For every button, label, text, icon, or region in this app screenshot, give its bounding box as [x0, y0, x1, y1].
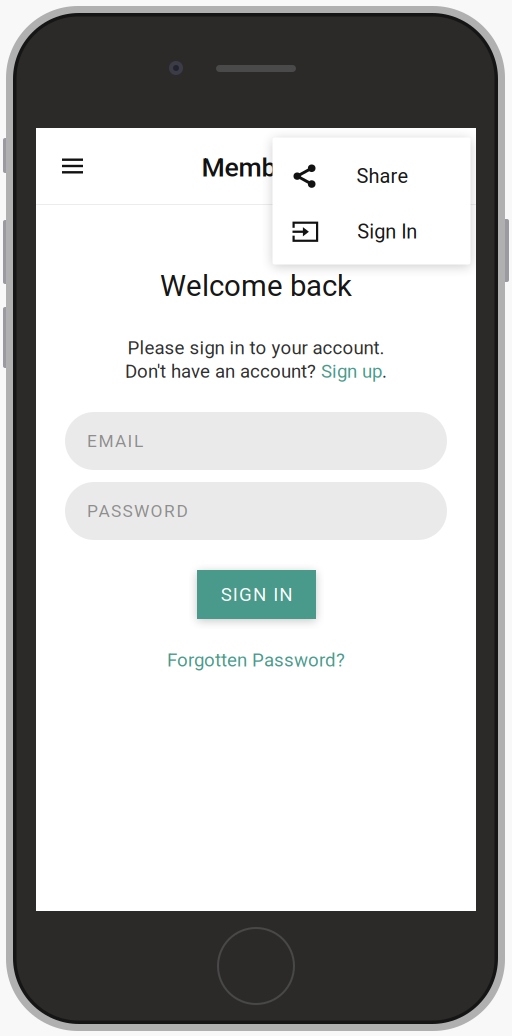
button[interactable]: Sign up: [321, 360, 382, 382]
button[interactable]: Sign In: [272, 204, 470, 259]
staticText: .: [382, 360, 387, 382]
button[interactable]: EMAIL: [65, 412, 447, 470]
button[interactable]: Share: [272, 148, 470, 204]
staticText: Don't have an account?: [125, 360, 321, 382]
staticText: EMAIL: [87, 431, 143, 451]
button[interactable]: Menu: [50, 144, 94, 188]
staticText: Membership: [201, 152, 350, 183]
staticText: SIGN IN: [221, 584, 292, 605]
staticText: Please sign in to your account.: [127, 337, 384, 359]
staticText: Welcome back: [160, 269, 352, 303]
staticText: PASSWORD: [87, 501, 187, 521]
staticText: Share: [356, 164, 408, 188]
staticText: Sign In: [357, 220, 417, 243]
staticText: Sign up: [321, 360, 382, 382]
button[interactable]: Forgotten Password?: [36, 648, 476, 672]
staticText: Forgotten Password?: [167, 649, 345, 671]
button[interactable]: SIGN IN: [197, 570, 316, 619]
button[interactable]: PASSWORD: [65, 482, 447, 540]
